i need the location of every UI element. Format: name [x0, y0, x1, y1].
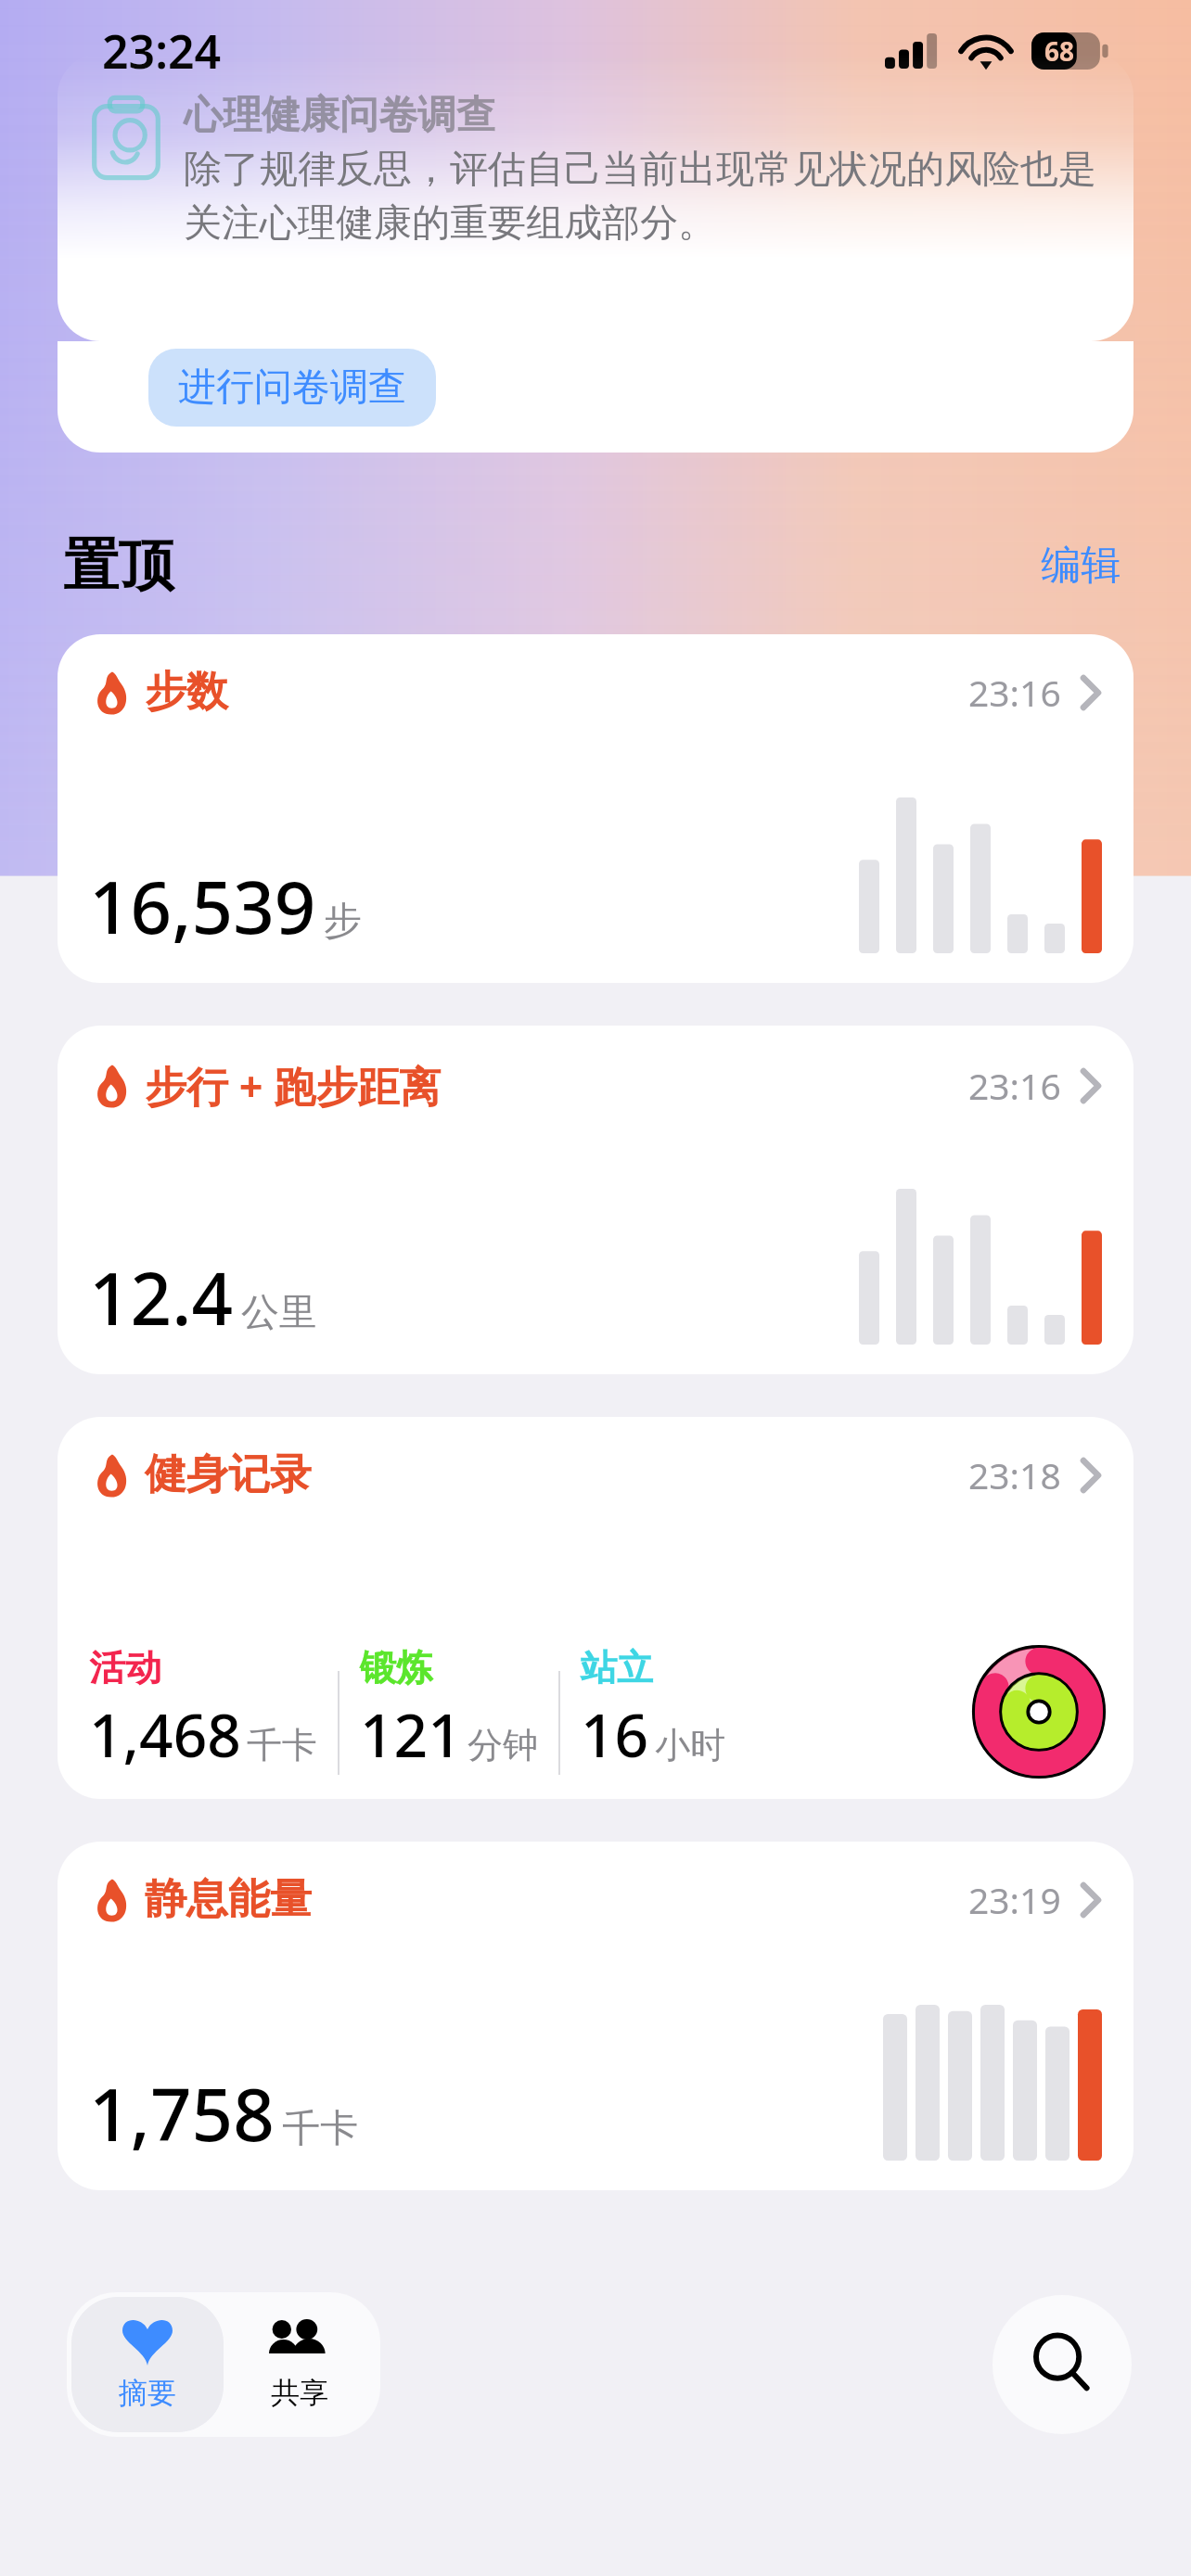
staticText: 小时	[655, 1723, 725, 1767]
staticText: 16,539	[89, 857, 316, 955]
button[interactable]: 步数	[58, 634, 1133, 983]
staticText: 步数	[145, 666, 228, 719]
staticText: 1,468	[89, 1694, 241, 1775]
staticText: 1,758	[89, 2064, 275, 2162]
staticText: 12.4	[89, 1248, 234, 1346]
staticText: 千卡	[282, 2105, 358, 2153]
button[interactable]: 摘要	[71, 2297, 224, 2432]
button[interactable]: 健身记录	[58, 1417, 1133, 1799]
button[interactable]: 步行 + 跑步距离	[58, 1026, 1133, 1374]
staticText: 23:16	[968, 1061, 1061, 1110]
staticText: 步行 + 跑步距离	[145, 1057, 442, 1114]
staticText: 23:24	[102, 19, 222, 83]
button[interactable]: 心理健康问卷调查	[58, 54, 1133, 341]
staticText: 公里	[241, 1289, 317, 1337]
staticText: 除了规律反思，评估自己当前出现常见状况的风险也是关注心理健康的重要组成部分。	[184, 146, 1109, 247]
staticText: 68	[1044, 33, 1075, 69]
staticText: 23:19	[968, 1875, 1061, 1924]
staticText: 静息能量	[145, 1873, 312, 1926]
staticText: 置顶	[63, 530, 174, 601]
staticText: 千卡	[247, 1723, 317, 1767]
staticText: 摘要	[119, 2375, 176, 2411]
button[interactable]: 编辑	[1033, 535, 1128, 596]
staticText: 心理健康问卷调查	[184, 91, 495, 140]
staticText: 共享	[271, 2375, 328, 2411]
staticText: 步	[324, 898, 362, 946]
button[interactable]: Search	[992, 2295, 1132, 2434]
staticText: 锻炼	[360, 1645, 432, 1690]
staticText: 16	[581, 1694, 649, 1775]
button[interactable]: 静息能量	[58, 1842, 1133, 2190]
staticText: 编辑	[1041, 541, 1121, 591]
button[interactable]: 进行问卷调查	[148, 349, 436, 427]
staticText: 健身记录	[145, 1448, 312, 1501]
staticText: 站立	[581, 1645, 653, 1690]
staticText: 23:18	[968, 1450, 1061, 1499]
staticText: 分钟	[467, 1723, 538, 1767]
staticText: 121	[360, 1694, 462, 1775]
button[interactable]: 共享	[224, 2297, 376, 2432]
staticText: 23:16	[968, 668, 1061, 717]
staticText: 活动	[89, 1645, 161, 1690]
staticText: 进行问卷调查	[178, 363, 406, 412]
